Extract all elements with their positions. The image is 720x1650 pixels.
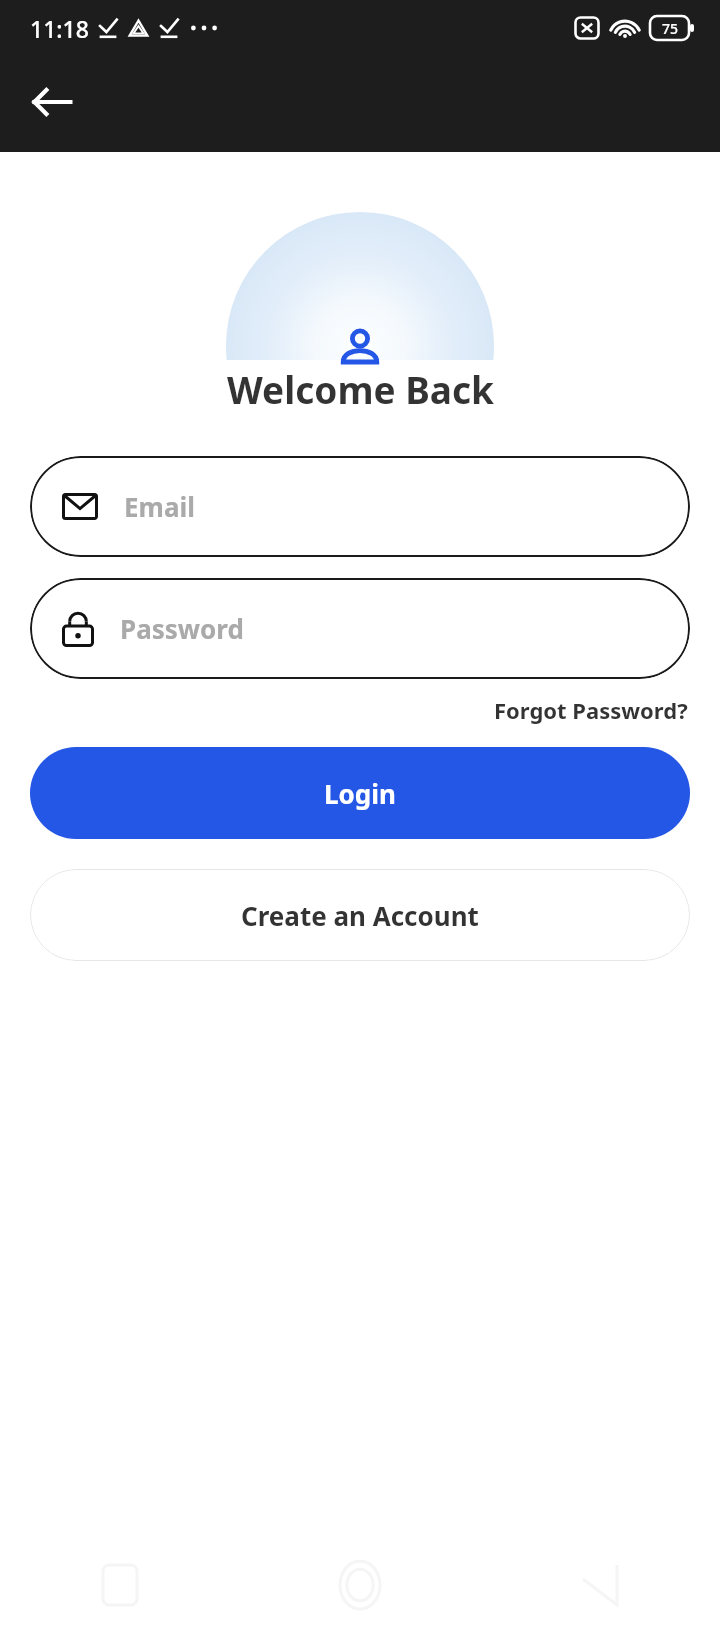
button[interactable]: Login (30, 747, 690, 839)
button[interactable]: Email field (30, 456, 690, 557)
staticText: Email (124, 489, 196, 524)
staticText: 11:18 (30, 13, 89, 44)
staticText: 75 (662, 19, 679, 38)
button[interactable]: Password field (30, 578, 690, 679)
staticText: Welcome Back (227, 364, 494, 414)
button[interactable]: Create an Account (30, 869, 690, 961)
staticText: Password (120, 611, 244, 646)
staticText: Create an Account (241, 898, 479, 933)
button[interactable]: Forgot Password? (490, 691, 692, 729)
staticText: Login (324, 776, 396, 811)
staticText: Forgot Password? (494, 695, 688, 725)
button[interactable]: Back (18, 68, 86, 136)
